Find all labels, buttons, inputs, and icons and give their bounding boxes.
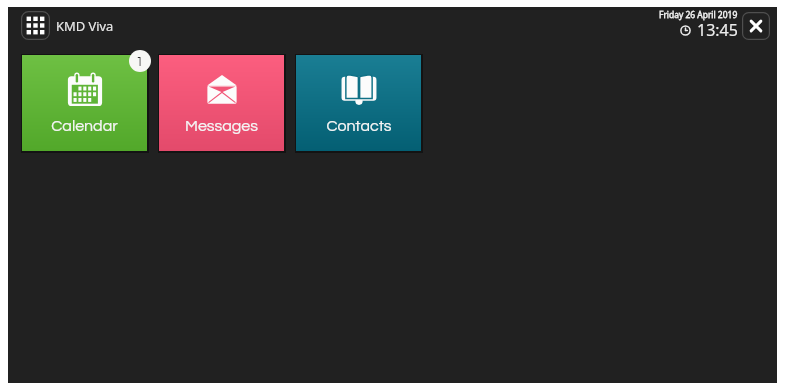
staticText: 13:45 <box>697 19 738 41</box>
button[interactable]: Contacts <box>296 55 421 151</box>
staticText: Messages <box>185 118 258 134</box>
staticText: KMD Viva <box>56 17 114 35</box>
button[interactable]: KMD Viva <box>21 11 114 40</box>
staticText: Contacts <box>326 118 392 134</box>
button[interactable]: Messages <box>159 55 284 151</box>
staticText: 1 <box>136 55 144 68</box>
button[interactable]: Calendar <box>22 55 147 151</box>
staticText: Friday 26 April 2019 <box>659 9 738 21</box>
button[interactable]: Close <box>742 12 770 40</box>
staticText: Calendar <box>51 118 118 134</box>
